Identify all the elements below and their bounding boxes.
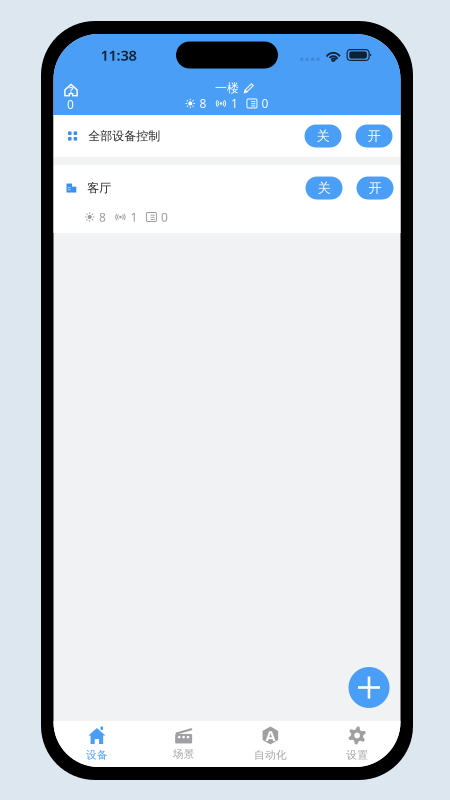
staticText: 一楼: [215, 81, 239, 95]
staticText: 0: [261, 95, 268, 111]
staticText: 1: [231, 95, 238, 111]
staticText: 8: [199, 95, 206, 111]
staticText: 开: [367, 128, 380, 144]
staticText: ?: [69, 83, 73, 96]
button[interactable]: 设置: [314, 721, 401, 767]
staticText: 11:38: [100, 45, 136, 65]
button[interactable]: Home: [53, 71, 100, 119]
button[interactable]: 开: [356, 176, 393, 199]
staticText: 1: [130, 209, 137, 225]
staticText: A: [265, 726, 275, 745]
staticText: 自动化: [254, 748, 287, 761]
button[interactable]: 场景: [140, 721, 227, 767]
staticText: 设备: [86, 748, 108, 761]
staticText: 8: [99, 209, 106, 225]
button[interactable]: A: [227, 721, 314, 767]
button[interactable]: 关: [304, 124, 341, 147]
staticText: 关: [317, 180, 330, 196]
button[interactable]: 开: [355, 124, 392, 147]
staticText: 全部设备控制: [88, 129, 160, 143]
staticText: 0: [67, 96, 74, 112]
button[interactable]: 设备: [53, 721, 140, 767]
button[interactable]: Add device: [348, 667, 389, 708]
staticText: 客厅: [87, 181, 111, 195]
staticText: 设置: [346, 748, 368, 761]
staticText: 关: [316, 128, 329, 144]
staticText: 0: [161, 209, 168, 225]
staticText: 开: [368, 180, 381, 196]
staticText: 场景: [173, 747, 195, 760]
button[interactable]: 关: [305, 176, 342, 199]
